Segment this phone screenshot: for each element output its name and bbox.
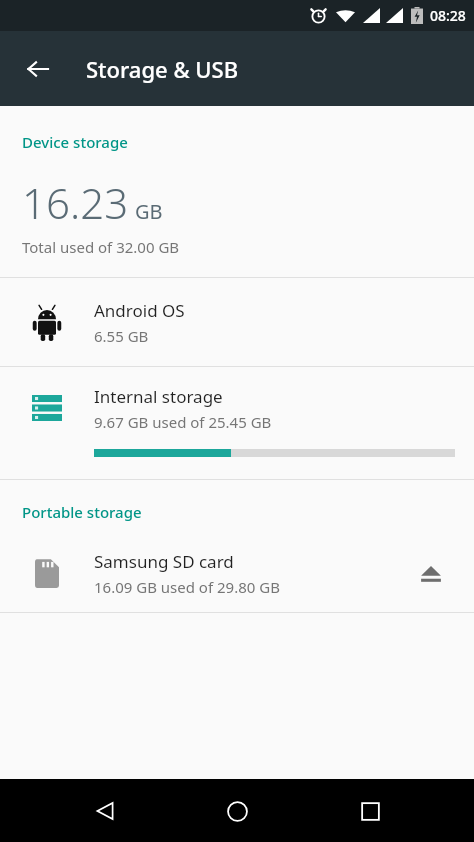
staticText: 16.23 — [22, 174, 129, 231]
button[interactable]: Back — [14, 45, 62, 93]
button[interactable]: Android OS — [0, 278, 474, 366]
staticText: Device storage — [22, 132, 128, 152]
staticText: GB — [135, 198, 163, 225]
staticText: Storage & USB — [86, 54, 239, 84]
staticText: Total used of 32.00 GB — [22, 237, 180, 257]
button[interactable]: Internal storage — [0, 367, 474, 479]
staticText: Internal storage — [94, 385, 223, 408]
staticText: 16.09 GB used of 29.80 GB — [94, 577, 280, 597]
staticText: Samsung SD card — [94, 550, 234, 573]
button[interactable]: Recents — [342, 783, 398, 839]
button[interactable]: Samsung SD card — [0, 534, 474, 612]
staticText: Portable storage — [22, 502, 142, 522]
button[interactable]: Home — [209, 783, 265, 839]
staticText: 08:28 — [430, 6, 466, 25]
staticText: Android OS — [94, 299, 185, 322]
staticText: 6.55 GB — [94, 326, 149, 346]
button[interactable]: Eject SD card — [408, 550, 454, 596]
button[interactable]: Back — [77, 783, 133, 839]
staticText: 9.67 GB used of 25.45 GB — [94, 412, 272, 432]
